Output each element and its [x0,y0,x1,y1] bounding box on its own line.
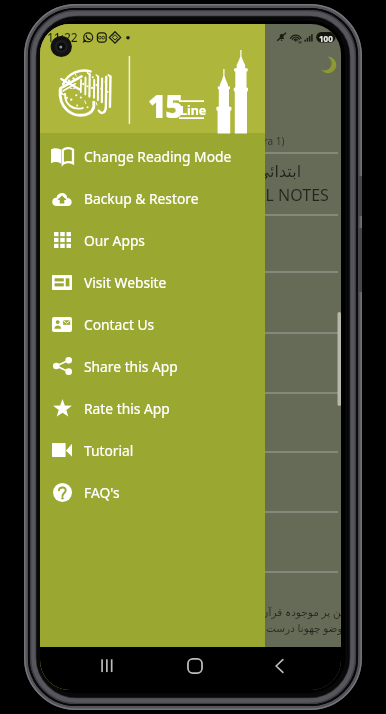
staticText: Rate this App [84,399,170,418]
staticText: INITIAL NOTES [218,184,329,206]
button[interactable]: Backup & Restore [40,177,265,219]
button[interactable]: Share this App [40,345,265,387]
staticText: ابتدائی نوٹس [215,160,302,182]
staticText: Visit Website [84,273,167,292]
staticText: ara 1) [258,134,285,148]
staticText: FAQ's [84,483,120,502]
staticText: Change Reading Mode [84,147,232,166]
staticText: 11:22 [47,29,78,45]
staticText: Backup & Restore [84,189,199,208]
button[interactable]: Home [187,658,203,674]
button[interactable]: Recents [99,658,115,674]
staticText: Line [180,102,207,119]
button[interactable]: Visit Website [40,261,265,303]
button[interactable]: Tutorial [40,429,265,471]
staticText: Contact Us [84,315,155,334]
button[interactable]: Back [272,658,288,674]
button[interactable]: Contact Us [40,303,265,345]
staticText: اسکرین پر موجودہ قرآن کو بغیر [228,605,341,619]
staticText: Share this App [84,357,178,376]
staticText: Our Apps [84,231,145,250]
button[interactable]: FAQ's [40,471,265,513]
staticText: 15 [148,85,183,127]
button[interactable]: Rate this App [40,387,265,429]
staticText: وضو چھونا درست نہیں ہے [228,621,341,635]
staticText: 100 [319,33,333,44]
staticText: Tutorial [84,441,134,460]
button[interactable]: Change Reading Mode [40,135,265,177]
button[interactable]: Our Apps [40,219,265,261]
